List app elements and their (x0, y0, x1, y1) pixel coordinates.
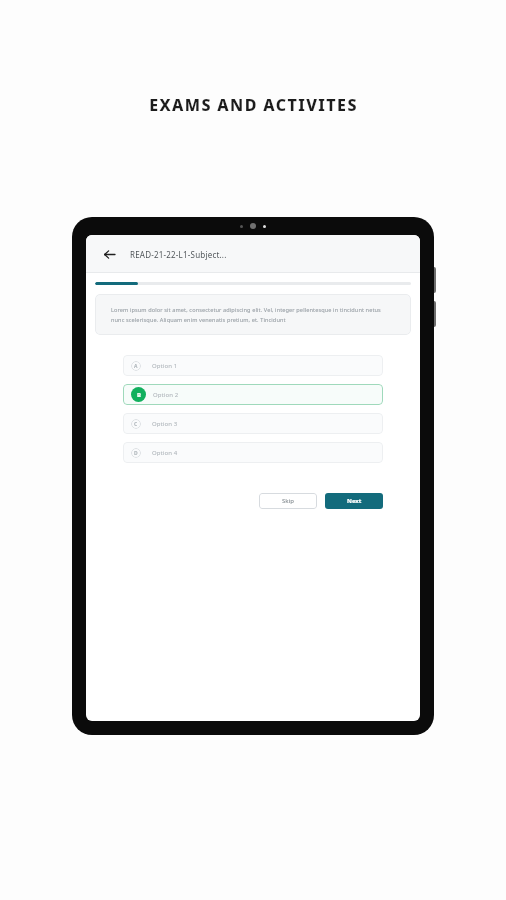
staticText: Lorem ipsum dolor sit amet, consectetur … (111, 306, 395, 323)
staticText: READ-21-22-L1-Subject... (130, 249, 227, 260)
staticText: EXAMS AND ACTIVITES (149, 94, 358, 116)
staticText: A (134, 363, 138, 370)
button[interactable]: Skip (259, 493, 317, 509)
button[interactable]: D (123, 442, 383, 463)
staticText: Option 2 (153, 391, 179, 399)
button[interactable]: A (123, 355, 383, 376)
staticText: Option 3 (152, 420, 178, 428)
staticText: Skip (282, 497, 294, 505)
staticText: Next (347, 497, 362, 505)
staticText: Option 1 (152, 362, 178, 370)
staticText: D (134, 450, 138, 457)
button[interactable]: Next (325, 493, 383, 509)
staticText: C (134, 421, 138, 428)
staticText: B (137, 391, 141, 399)
button[interactable]: Back (98, 243, 120, 265)
staticText: Option 4 (152, 449, 178, 457)
button[interactable]: C (123, 413, 383, 434)
button[interactable]: B (123, 384, 383, 405)
